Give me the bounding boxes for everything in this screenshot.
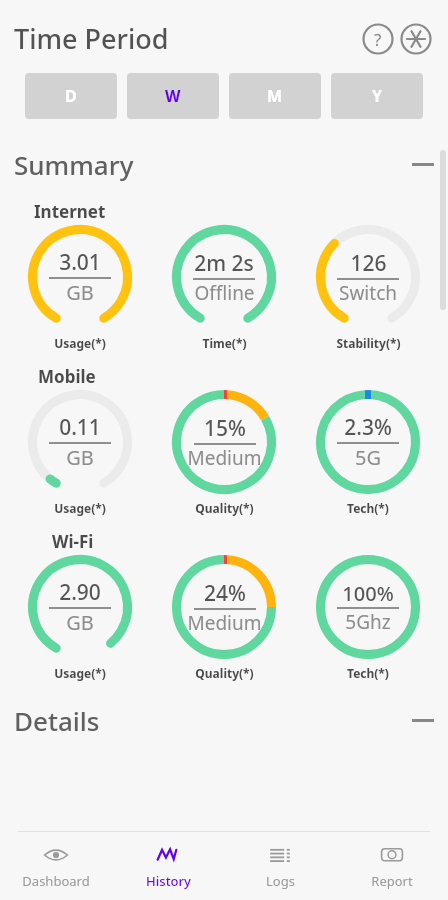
staticText: 5G [355, 444, 381, 471]
staticText: Wi-Fi [52, 530, 94, 553]
staticText: D [65, 85, 77, 107]
staticText: Tech(*) [347, 665, 389, 681]
staticText: Summary [14, 147, 134, 182]
button[interactable]: Help [362, 23, 394, 55]
staticText: Details [14, 703, 100, 738]
staticText: Usage(*) [54, 665, 106, 681]
staticText: Quality(*) [195, 500, 254, 516]
button[interactable]: Summary [0, 143, 448, 186]
staticText: 2m 2s [194, 249, 254, 278]
button[interactable]: Report [336, 832, 448, 900]
button[interactable]: Details [0, 699, 448, 742]
staticText: Y [372, 85, 383, 107]
staticText: 100% [342, 580, 394, 607]
staticText: Dashboard [22, 872, 90, 890]
button[interactable]: M [229, 73, 321, 119]
staticText: GB [66, 279, 94, 306]
staticText: Mobile [38, 365, 96, 388]
staticText: Time Period [14, 20, 169, 57]
staticText: ? [374, 28, 382, 51]
staticText: Medium [187, 445, 262, 471]
staticText: Tech(*) [347, 500, 389, 516]
staticText: Usage(*) [54, 335, 106, 351]
staticText: W [165, 85, 181, 107]
staticText: Medium [187, 610, 262, 636]
staticText: Time(*) [202, 335, 247, 351]
staticText: 3.01 [59, 248, 101, 277]
button[interactable]: History [112, 832, 224, 900]
staticText: Offline [194, 280, 255, 306]
staticText: 15% [204, 414, 246, 443]
staticText: 24% [204, 579, 246, 608]
staticText: Stability(*) [336, 335, 401, 351]
staticText: Usage(*) [54, 500, 106, 516]
button[interactable]: W [127, 73, 219, 119]
button[interactable]: Logs [224, 832, 336, 900]
staticText: Logs [266, 872, 295, 890]
button[interactable]: D [25, 73, 117, 119]
staticText: History [146, 872, 191, 890]
staticText: 5Ghz [345, 609, 391, 635]
button[interactable]: Y [331, 73, 423, 119]
staticText: Report [371, 872, 413, 890]
staticText: 2.3% [344, 413, 392, 442]
staticText: Internet [34, 200, 106, 223]
button[interactable]: Settings [400, 23, 432, 55]
staticText: 126 [350, 249, 387, 278]
staticText: GB [66, 609, 94, 636]
staticText: 0.11 [59, 413, 101, 442]
staticText: GB [66, 444, 94, 471]
staticText: 2.90 [59, 578, 101, 607]
staticText: Switch [339, 280, 397, 306]
staticText: Quality(*) [195, 665, 254, 681]
button[interactable]: Dashboard [0, 832, 112, 900]
staticText: M [267, 85, 283, 107]
